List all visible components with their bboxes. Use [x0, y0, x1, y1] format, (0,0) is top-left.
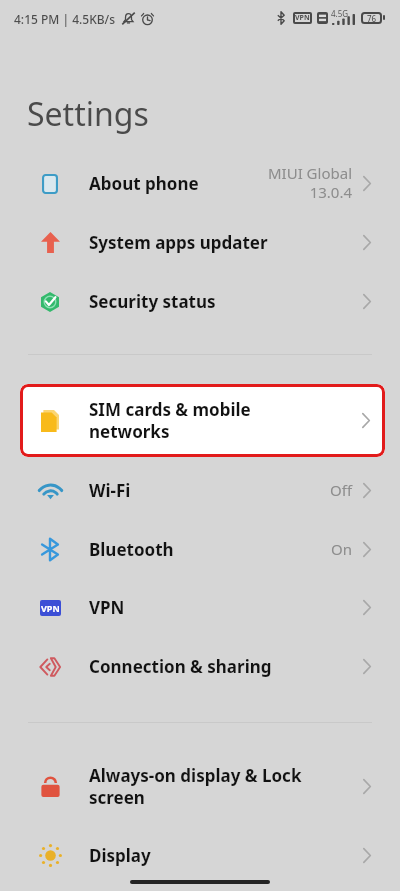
button[interactable]: Display — [0, 826, 400, 885]
button[interactable]: Wi-Fi — [0, 461, 400, 520]
button[interactable]: Connection & sharing — [0, 637, 400, 696]
staticText: Off — [329, 480, 352, 500]
staticText: Bluetooth — [89, 538, 174, 561]
staticText: VPN — [41, 602, 60, 614]
staticText: 4.5G — [331, 8, 349, 19]
button[interactable]: SIM cards & mobile networks — [20, 384, 385, 457]
staticText: System apps updater — [89, 231, 268, 254]
staticText: SIM cards & mobile networks — [89, 398, 251, 443]
staticText: VPN — [89, 596, 125, 619]
staticText: Settings — [27, 92, 149, 136]
button[interactable]: About phone — [0, 154, 400, 213]
staticText: 76 — [367, 13, 377, 24]
button[interactable]: VPN — [0, 578, 400, 637]
staticText: Security status — [89, 290, 216, 313]
staticText: About phone — [89, 172, 199, 195]
staticText: Wi-Fi — [89, 479, 131, 502]
button[interactable]: System apps updater — [0, 213, 400, 272]
staticText: Always-on display & Lock screen — [89, 764, 302, 809]
staticText: Connection & sharing — [89, 655, 272, 678]
button[interactable]: Always-on display & Lock screen — [0, 746, 400, 826]
button[interactable]: Security status — [0, 272, 400, 331]
staticText: VPN — [295, 13, 310, 23]
staticText: Display — [89, 844, 151, 867]
staticText: 4:15 PM | 4.5KB/s — [14, 11, 116, 27]
staticText: MIUI Global 13.0.4 — [267, 163, 352, 202]
staticText: On — [331, 539, 352, 559]
button[interactable]: Bluetooth — [0, 520, 400, 579]
